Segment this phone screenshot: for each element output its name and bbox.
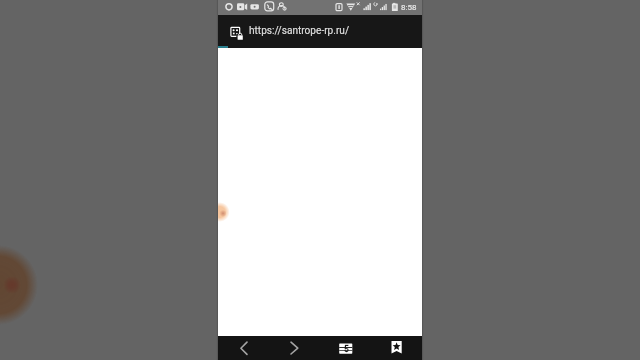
staticText: 5 — [344, 344, 349, 354]
staticText: 8:58 — [401, 3, 417, 12]
button[interactable]: Tabs — [320, 336, 371, 360]
button[interactable]: Bookmarks — [371, 336, 422, 360]
button[interactable]: Back — [218, 336, 269, 360]
button[interactable]: Forward — [269, 336, 320, 360]
button[interactable]: Translate page — [227, 23, 247, 43]
staticText: https://santrope-rp.ru/ — [249, 25, 350, 37]
button[interactable]: https://santrope-rp.ru/ — [247, 15, 422, 48]
